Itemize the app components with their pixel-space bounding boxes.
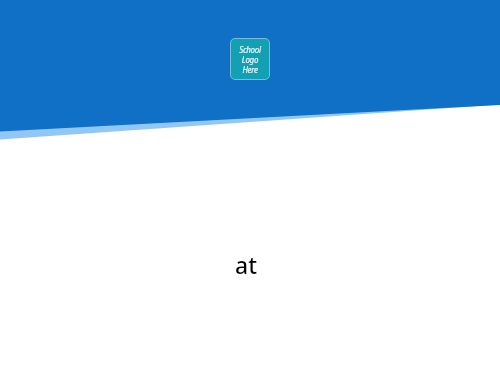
- staticText: School Logo Here: [239, 44, 261, 76]
- staticText: at: [235, 249, 257, 280]
- button[interactable]: School logo: [230, 38, 270, 80]
